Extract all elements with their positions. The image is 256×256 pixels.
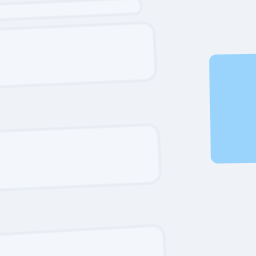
button[interactable]: Selected card	[207, 60, 256, 169]
button[interactable]: Section header	[0, 0, 143, 15]
